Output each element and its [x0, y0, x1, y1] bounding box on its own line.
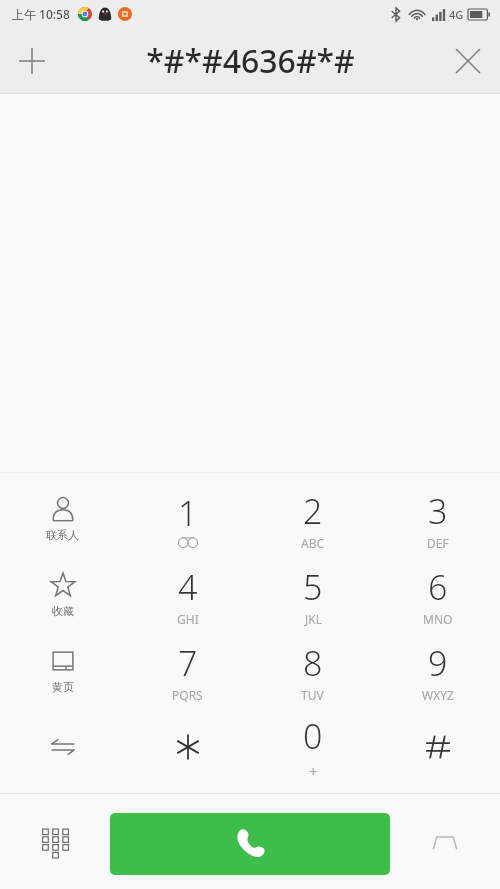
button[interactable]: 4	[125, 557, 250, 633]
button[interactable]: 1	[125, 481, 250, 557]
staticText: 7	[178, 640, 198, 686]
button[interactable]: Star	[125, 709, 250, 785]
button[interactable]: Add contact	[0, 29, 64, 93]
button[interactable]: Dialpad	[0, 794, 110, 889]
staticText: 收藏	[52, 604, 74, 618]
staticText: ABC	[301, 535, 325, 551]
staticText: 1	[178, 490, 198, 536]
button[interactable]: 3	[375, 481, 500, 557]
button[interactable]: 0	[250, 709, 375, 785]
button[interactable]: 9	[375, 633, 500, 709]
button[interactable]: Switch	[0, 709, 125, 785]
staticText: GHI	[177, 611, 199, 627]
button[interactable]: 8	[250, 633, 375, 709]
staticText: 6	[428, 564, 448, 610]
button[interactable]: Call	[110, 813, 390, 875]
staticText: JKL	[305, 611, 322, 627]
button[interactable]: 6	[375, 557, 500, 633]
button[interactable]: Hash	[375, 709, 500, 785]
staticText: *#*#4636#*#	[146, 39, 355, 83]
staticText: 4G	[449, 7, 464, 22]
staticText: 0	[303, 713, 323, 759]
staticText: 5	[303, 564, 323, 610]
staticText: TUV	[301, 687, 324, 703]
staticText: 4	[178, 564, 198, 610]
button[interactable]: 5	[250, 557, 375, 633]
button[interactable]: Contacts	[0, 481, 125, 557]
button[interactable]: 7	[125, 633, 250, 709]
staticText: 3	[428, 488, 448, 534]
staticText: DEF	[427, 535, 449, 551]
staticText: PQRS	[172, 687, 203, 703]
staticText: 9	[428, 640, 448, 686]
staticText: 联系人	[46, 528, 79, 542]
staticText: MNO	[423, 611, 453, 627]
button[interactable]: Clear	[436, 29, 500, 93]
staticText: 2	[303, 488, 323, 534]
staticText: 上午 10:58	[12, 6, 70, 22]
button[interactable]: 2	[250, 481, 375, 557]
button[interactable]: Yellow pages	[0, 633, 125, 709]
staticText: +	[309, 761, 318, 781]
button[interactable]: Hide keypad	[390, 794, 500, 889]
button[interactable]: Favorites	[0, 557, 125, 633]
staticText: 8	[303, 640, 323, 686]
staticText: WXYZ	[422, 687, 454, 703]
staticText: 黄页	[52, 680, 74, 694]
